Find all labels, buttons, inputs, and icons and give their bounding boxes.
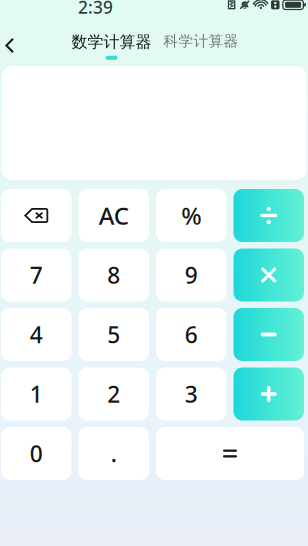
button[interactable]: Plus <box>233 367 304 420</box>
staticText: % <box>181 200 201 231</box>
button[interactable]: 数学计算器 <box>66 29 156 63</box>
button[interactable]: 3 <box>156 367 226 420</box>
staticText: 2 <box>107 379 120 409</box>
button[interactable]: 9 <box>156 248 226 301</box>
staticText: 6 <box>185 319 198 349</box>
button[interactable]: 6 <box>156 308 226 361</box>
button[interactable] <box>156 189 226 242</box>
staticText: . <box>111 438 117 468</box>
staticText: 数学计算器 <box>71 32 151 52</box>
button[interactable]: . <box>78 427 149 480</box>
button[interactable]: 2 <box>78 367 149 420</box>
staticText: 9 <box>185 260 198 290</box>
button[interactable]: 7 <box>1 248 71 301</box>
staticText: 0 <box>30 438 43 468</box>
staticText: 3 <box>185 379 198 409</box>
button[interactable]: 8 <box>78 248 149 301</box>
staticText: 科学计算器 <box>163 32 238 50</box>
button[interactable]: Divide <box>233 189 304 242</box>
staticText: 7 <box>30 260 43 290</box>
button[interactable]: 科学计算器 <box>161 24 241 58</box>
button[interactable]: Minus <box>233 308 304 361</box>
button[interactable]: Delete <box>1 189 71 242</box>
button[interactable]: Multiply <box>233 248 304 301</box>
staticText: 1 <box>30 379 43 409</box>
button[interactable] <box>78 189 149 242</box>
staticText: AC <box>99 200 129 231</box>
staticText: 8 <box>107 260 120 290</box>
button[interactable]: 4 <box>1 308 71 361</box>
button[interactable]: 0 <box>1 427 71 480</box>
button[interactable]: Equals <box>156 427 304 480</box>
button[interactable]: 5 <box>78 308 149 361</box>
button[interactable]: 1 <box>1 367 71 420</box>
staticText: 4 <box>30 319 43 349</box>
staticText: 5 <box>107 319 120 349</box>
button[interactable]: Back <box>0 28 27 62</box>
staticText: 2:39 <box>78 0 113 18</box>
